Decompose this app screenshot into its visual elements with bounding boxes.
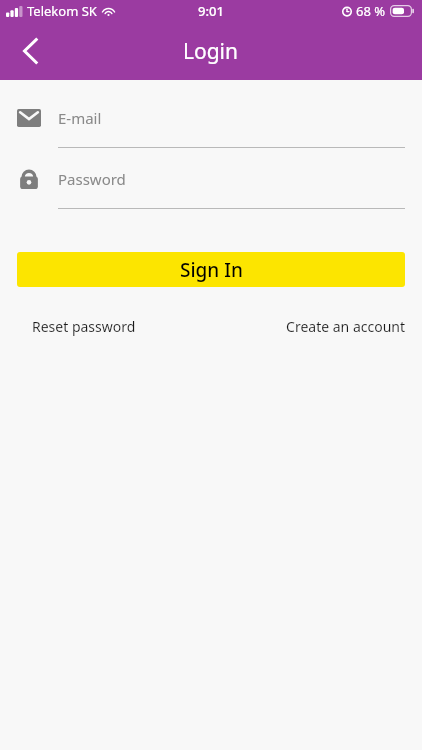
staticText: Password xyxy=(58,169,126,189)
button[interactable]: Back xyxy=(8,29,52,73)
button[interactable]: E-mail xyxy=(0,98,422,138)
staticText: Telekom SK xyxy=(27,2,97,20)
staticText: Create an account xyxy=(286,317,405,336)
staticText: E-mail xyxy=(58,108,102,128)
button[interactable]: Create an account xyxy=(211,314,405,339)
button[interactable]: Password xyxy=(0,159,422,199)
staticText: 9:01 xyxy=(198,2,224,20)
staticText: Sign In xyxy=(180,257,243,283)
button[interactable]: Reset password xyxy=(17,314,211,339)
button[interactable]: Sign In xyxy=(17,252,405,287)
staticText: Login xyxy=(183,37,239,66)
staticText: 68 % xyxy=(356,2,386,20)
staticText: Reset password xyxy=(32,317,136,336)
